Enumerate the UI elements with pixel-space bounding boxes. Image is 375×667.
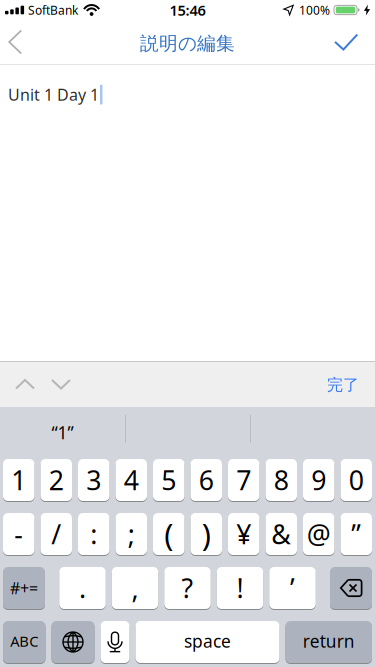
button[interactable]: ! [217, 567, 263, 609]
staticText: ; [128, 516, 135, 552]
button[interactable]: 4 [115, 459, 147, 501]
button[interactable]: Next field [52, 380, 70, 389]
button[interactable]: - [3, 513, 34, 555]
staticText: 1 [11, 462, 26, 498]
staticText: 5 [161, 462, 176, 498]
button[interactable]: 8 [265, 459, 297, 501]
staticText: ) [202, 514, 211, 554]
staticText: , [131, 570, 138, 606]
button[interactable]: 6 [190, 459, 222, 501]
button[interactable]: “1” [0, 407, 125, 451]
button[interactable]: Dictate [100, 621, 129, 663]
staticText: ¥ [236, 516, 251, 552]
button[interactable]: ( [153, 513, 184, 555]
button[interactable]: / [40, 513, 72, 555]
staticText: Unit 1 Day 1 [8, 84, 99, 105]
button[interactable]: Previous field [16, 380, 34, 389]
button[interactable]: 完了 [327, 375, 359, 394]
staticText: 説明の編集 [140, 32, 235, 55]
staticText: #+= [10, 577, 38, 599]
staticText: ? [181, 570, 193, 606]
staticText: 100% [299, 2, 330, 18]
button[interactable]: 7 [228, 459, 259, 501]
button[interactable]: ; [115, 513, 147, 555]
staticText: / [51, 516, 61, 552]
staticText: 15:46 [169, 0, 205, 20]
staticText: ” [351, 516, 361, 552]
button[interactable]: ABC [3, 621, 45, 663]
button[interactable]: 9 [303, 459, 334, 501]
button[interactable]: : [78, 513, 109, 555]
staticText: ABC [10, 631, 38, 651]
staticText: . [79, 570, 86, 606]
button[interactable]: 3 [78, 459, 109, 501]
button[interactable]: Done [334, 20, 375, 63]
button[interactable]: Next keyboard [51, 621, 94, 663]
staticText: “1” [51, 421, 73, 444]
button[interactable]: . [59, 567, 106, 609]
staticText: 8 [274, 462, 289, 498]
staticText: 完了 [327, 375, 359, 395]
staticText: space [184, 629, 231, 652]
button[interactable]: 2 [40, 459, 72, 501]
staticText: 4 [124, 462, 139, 498]
staticText: ! [236, 570, 243, 606]
button[interactable]: Back [0, 20, 22, 63]
button[interactable]: 5 [153, 459, 184, 501]
staticText: ’ [290, 570, 295, 606]
staticText: SoftBank [28, 2, 78, 18]
button[interactable]: ¥ [228, 513, 259, 555]
button[interactable]: ? [164, 567, 211, 609]
button[interactable]: , [112, 567, 158, 609]
staticText: : [90, 516, 97, 552]
staticText: & [271, 516, 291, 552]
staticText: return [303, 629, 355, 652]
button[interactable]: return [285, 621, 372, 663]
staticText: 6 [199, 462, 214, 498]
button[interactable]: 0 [340, 459, 372, 501]
button[interactable]: #+= [3, 567, 45, 609]
button[interactable]: & [265, 513, 297, 555]
staticText: 3 [86, 462, 101, 498]
button[interactable]: ) [190, 513, 222, 555]
button[interactable]: ” [340, 513, 372, 555]
button[interactable]: Delete [330, 567, 372, 609]
button[interactable]: ’ [269, 567, 316, 609]
button[interactable]: @ [303, 513, 334, 555]
staticText: @ [307, 516, 331, 552]
button[interactable]: space [135, 621, 279, 663]
staticText: 0 [349, 462, 364, 498]
staticText: 7 [236, 462, 251, 498]
button[interactable]: 1 [3, 459, 34, 501]
staticText: ( [164, 514, 173, 554]
staticText: - [14, 516, 23, 552]
staticText: 2 [49, 462, 64, 498]
staticText: 9 [311, 462, 326, 498]
